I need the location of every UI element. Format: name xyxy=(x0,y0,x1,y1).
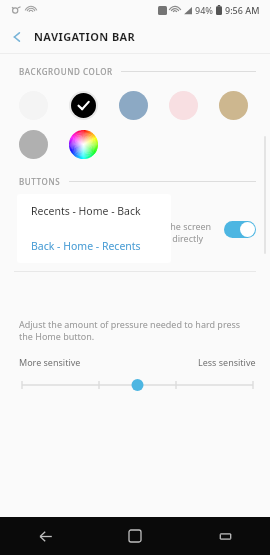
button[interactable]: Color option 4 xyxy=(169,91,198,120)
button[interactable]: Pressure sensitivity slider xyxy=(19,377,256,393)
button[interactable]: Custom color xyxy=(69,130,98,159)
staticText: Recents - Home - Back xyxy=(31,204,141,218)
staticText: Unlock with Home button xyxy=(19,200,164,216)
button[interactable]: Recents xyxy=(180,517,270,555)
button[interactable]: Home xyxy=(90,517,180,555)
button[interactable]: Grey color xyxy=(19,130,48,159)
button[interactable]: Unlock with Home button xyxy=(0,200,270,258)
button[interactable]: Color option 3 xyxy=(119,91,148,120)
staticText: Hard press the Home button while the scr… xyxy=(19,220,214,258)
button[interactable]: Unlock with Home button toggle xyxy=(224,221,256,238)
staticText: NAVIGATION BAR xyxy=(34,29,136,44)
button[interactable]: Back xyxy=(0,20,34,53)
button[interactable]: Color option 5 xyxy=(219,91,248,120)
staticText: Adjust the amount of pressure needed to … xyxy=(19,318,256,343)
staticText: 94% xyxy=(195,4,213,16)
button[interactable]: Back - Home - Recents xyxy=(17,228,171,263)
staticText: BACKGROUND COLOR xyxy=(19,66,113,77)
staticText: Less sensitive xyxy=(198,356,256,368)
button[interactable]: Recents - Home - Back xyxy=(17,194,171,228)
staticText: 9:56 AM xyxy=(225,4,260,16)
button[interactable]: Color option 2 xyxy=(69,91,98,120)
button[interactable]: Back xyxy=(0,517,90,555)
staticText: BUTTONS xyxy=(19,176,61,187)
staticText: More sensitive xyxy=(19,356,81,368)
staticText: Back - Home - Recents xyxy=(31,239,141,253)
